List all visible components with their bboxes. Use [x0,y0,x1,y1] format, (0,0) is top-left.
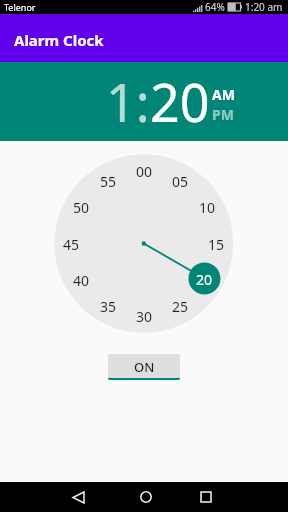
button[interactable] [58,482,98,512]
staticText: 25 [172,297,189,316]
button[interactable]: AM [212,85,235,104]
staticText: 45 [63,235,80,254]
staticText: 35 [100,297,117,316]
button[interactable] [126,482,166,512]
staticText: Alarm Clock [14,30,104,50]
staticText: Telenor [4,1,36,13]
staticText: 10 [199,198,216,217]
staticText: 30 [136,307,153,326]
staticText: 20 [150,66,210,137]
staticText: 05 [172,172,189,191]
button[interactable]: PM [212,105,234,124]
staticText: 55 [100,172,117,191]
staticText: 40 [73,271,90,290]
staticText: ON [134,358,155,376]
button[interactable]: ON [108,354,180,380]
button[interactable] [186,482,226,512]
staticText: 00 [136,162,153,181]
staticText: 20 [196,270,213,289]
staticText: 64% [205,0,225,14]
staticText: 50 [73,198,90,217]
staticText: 15 [208,235,225,254]
staticText: 1:20 am [245,0,283,14]
staticText: 1: [106,66,150,137]
